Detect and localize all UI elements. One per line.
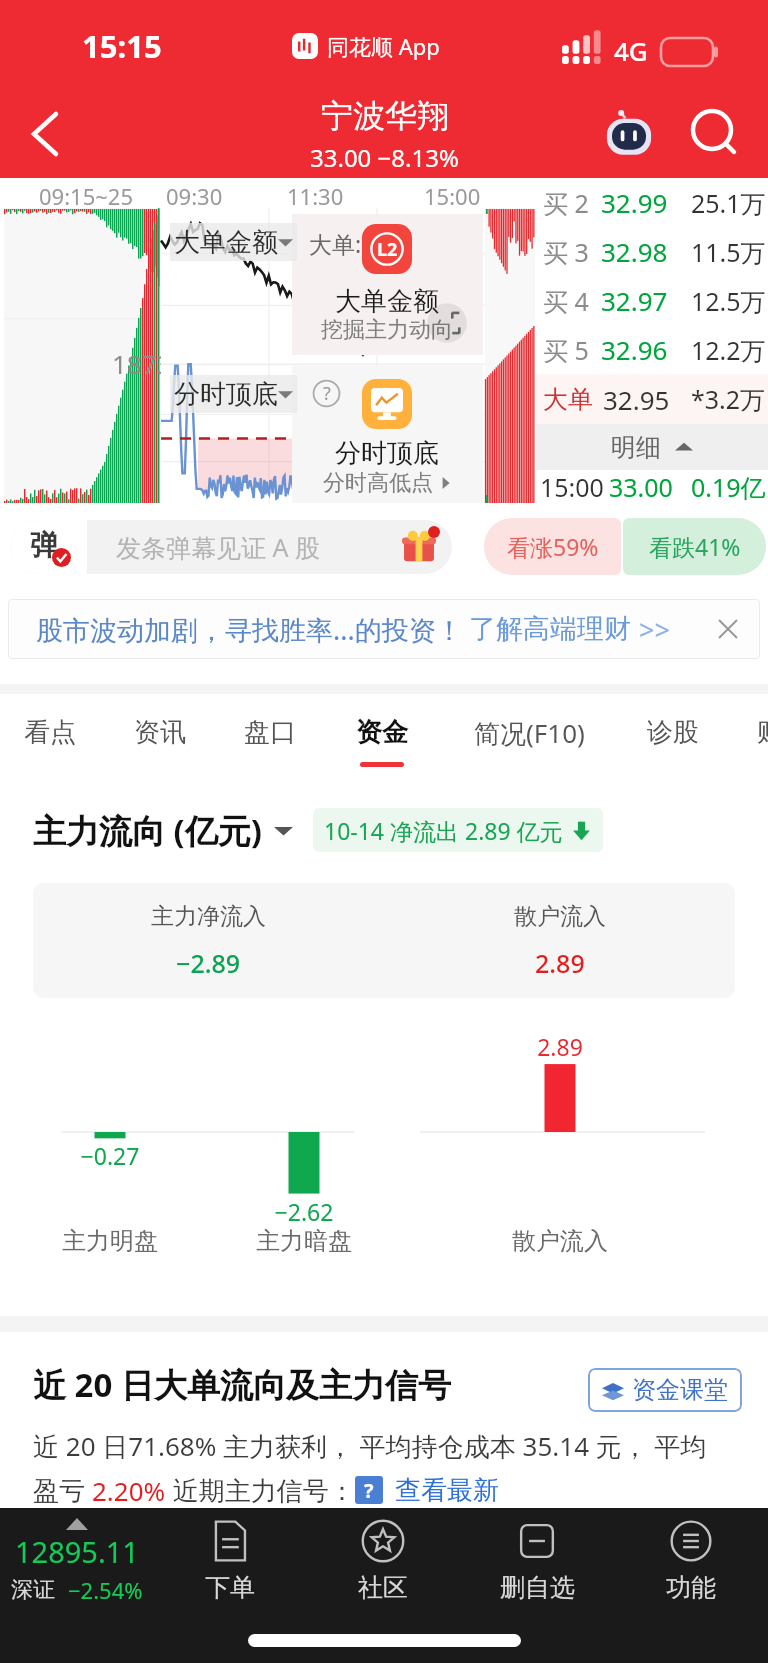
staticText: 分时高低点 (323, 469, 433, 497)
staticText: 32.99 (601, 185, 668, 220)
staticText: 09:15~25 (39, 181, 133, 211)
staticText: 12.2万 (691, 333, 766, 367)
button[interactable]: 买 4 (543, 276, 766, 325)
staticText: 主力净流入 (151, 902, 266, 931)
staticText: 深证 (11, 1576, 55, 1604)
staticText: ? (323, 381, 331, 406)
staticText: 买 5 (543, 333, 589, 367)
staticText: 资金课堂 (632, 1375, 728, 1405)
staticText: 主力流向 (亿元) (33, 808, 262, 853)
staticText: 32.98 (601, 234, 668, 269)
staticText: 12895.11 (15, 1532, 139, 1571)
button[interactable]: 大单金额 (161, 214, 483, 355)
staticText: −2.89 (176, 946, 241, 980)
staticText: 同花顺 App (327, 31, 440, 61)
button[interactable]: 简况(F10) (462, 694, 596, 785)
staticText: 分时顶底 (174, 378, 278, 411)
staticText: 大单金额 (291, 285, 483, 318)
staticText: 33.00 −8.13% (310, 141, 459, 174)
staticText: 看涨59% (507, 531, 599, 562)
button[interactable]: Back (4, 91, 88, 175)
button[interactable]: AI assistant (597, 102, 661, 166)
button[interactable]: 下单 (153, 1508, 306, 1608)
staticText: 散户流入 (514, 902, 606, 931)
staticText: 买 4 (543, 284, 589, 318)
staticText: 0.19亿 (691, 470, 766, 503)
button[interactable]: 看点 (22, 694, 78, 785)
staticText: 25.1万 (691, 186, 766, 220)
staticText: 挖掘主力动向 (321, 316, 453, 344)
staticText: 10-14 净流出 2.89 亿元 (324, 815, 563, 846)
button[interactable]: 10-14 净流出 2.89 亿元 (324, 808, 592, 852)
staticText: 近期主力信号： (166, 1472, 355, 1508)
staticText: 33.00 (609, 470, 673, 503)
staticText: 32.97 (601, 283, 668, 318)
button[interactable]: 买 2 (543, 178, 766, 227)
button[interactable]: Search (680, 98, 744, 162)
button[interactable]: 查看最新 (395, 1474, 499, 1507)
button[interactable]: 功能 (614, 1508, 768, 1608)
staticText: 2.89 (535, 946, 585, 980)
staticText: 09:30 (166, 181, 223, 211)
button[interactable]: 弹 (10, 520, 452, 574)
button[interactable]: 诊股 (645, 694, 701, 785)
staticText: 32.95 (603, 382, 670, 417)
button[interactable]: 资金课堂 (602, 1368, 728, 1412)
staticText: 简况(F10) (474, 715, 585, 751)
staticText: 诊股 (647, 716, 699, 749)
button[interactable]: 资金 (352, 694, 412, 785)
staticText: −2.54% (68, 1575, 143, 1605)
button[interactable]: 社区 (306, 1508, 460, 1608)
staticText: 功能 (666, 1572, 716, 1603)
staticText: 弹 (30, 527, 59, 564)
staticText: 11:30 (287, 181, 344, 211)
staticText: 大单 (543, 384, 593, 415)
button[interactable]: 12895.11 (0, 1508, 153, 1608)
button[interactable]: 盘口 (242, 694, 298, 785)
staticText: 主力暗盘 (234, 1226, 374, 1256)
staticText: 15:00 (540, 470, 604, 503)
staticText: >> (639, 611, 670, 648)
staticText: *3.2万 (691, 382, 766, 416)
button[interactable]: 财 (755, 694, 768, 785)
staticText: 查看最新 (395, 1474, 499, 1507)
staticText: 近 20 日大单流向及主力信号 (33, 1362, 451, 1407)
staticText: 12.5万 (691, 284, 766, 318)
staticText: 资讯 (134, 716, 186, 749)
staticText: 明细 (611, 432, 661, 463)
staticText: 财 (757, 716, 768, 749)
staticText: 大单金额 (174, 226, 278, 259)
staticText: 宁波华翔 (321, 96, 449, 136)
staticText: L2 (377, 237, 398, 262)
staticText: −0.27 (50, 1140, 170, 1171)
staticText: 32.96 (601, 332, 668, 367)
staticText: 近 20 日71.68% 主力获利， 平均持仓成本 35.14 元， 平均 (33, 1428, 707, 1464)
button[interactable]: 资讯 (132, 694, 188, 785)
button[interactable]: 买 3 (543, 227, 766, 276)
button[interactable]: 分时顶底 (161, 366, 483, 503)
staticText: 盈亏 (33, 1472, 92, 1508)
button[interactable]: Close (710, 611, 746, 647)
staticText: 买 2 (543, 186, 589, 220)
button[interactable]: 15:00 (540, 470, 766, 503)
button[interactable]: 买 5 (543, 325, 766, 374)
staticText: 15:15 (82, 25, 162, 67)
button[interactable]: 看跌41% (623, 518, 766, 575)
staticText: 发条弹幕见证 A 股 (116, 530, 320, 564)
staticText: 买 3 (543, 235, 589, 269)
staticText: 2.20% (92, 1473, 166, 1508)
staticText: 主力明盘 (40, 1226, 180, 1256)
staticText: 4G (614, 33, 648, 68)
staticText: 2.89 (500, 1031, 620, 1062)
staticText: 股市波动加剧，寻找胜率...的投资！ (36, 611, 463, 648)
button[interactable]: 看涨59% (484, 518, 621, 575)
staticText: 11.5万 (691, 235, 766, 269)
button[interactable]: 删自选 (460, 1508, 614, 1608)
button[interactable]: 明细 (536, 424, 768, 470)
button[interactable]: 股市波动加剧，寻找胜率...的投资！ (8, 599, 760, 659)
staticText: 资金 (356, 716, 408, 749)
staticText: 1873 (112, 346, 172, 381)
staticText: 社区 (358, 1572, 408, 1603)
button[interactable]: 大单 (543, 374, 766, 424)
staticText: 散户流入 (490, 1226, 630, 1256)
